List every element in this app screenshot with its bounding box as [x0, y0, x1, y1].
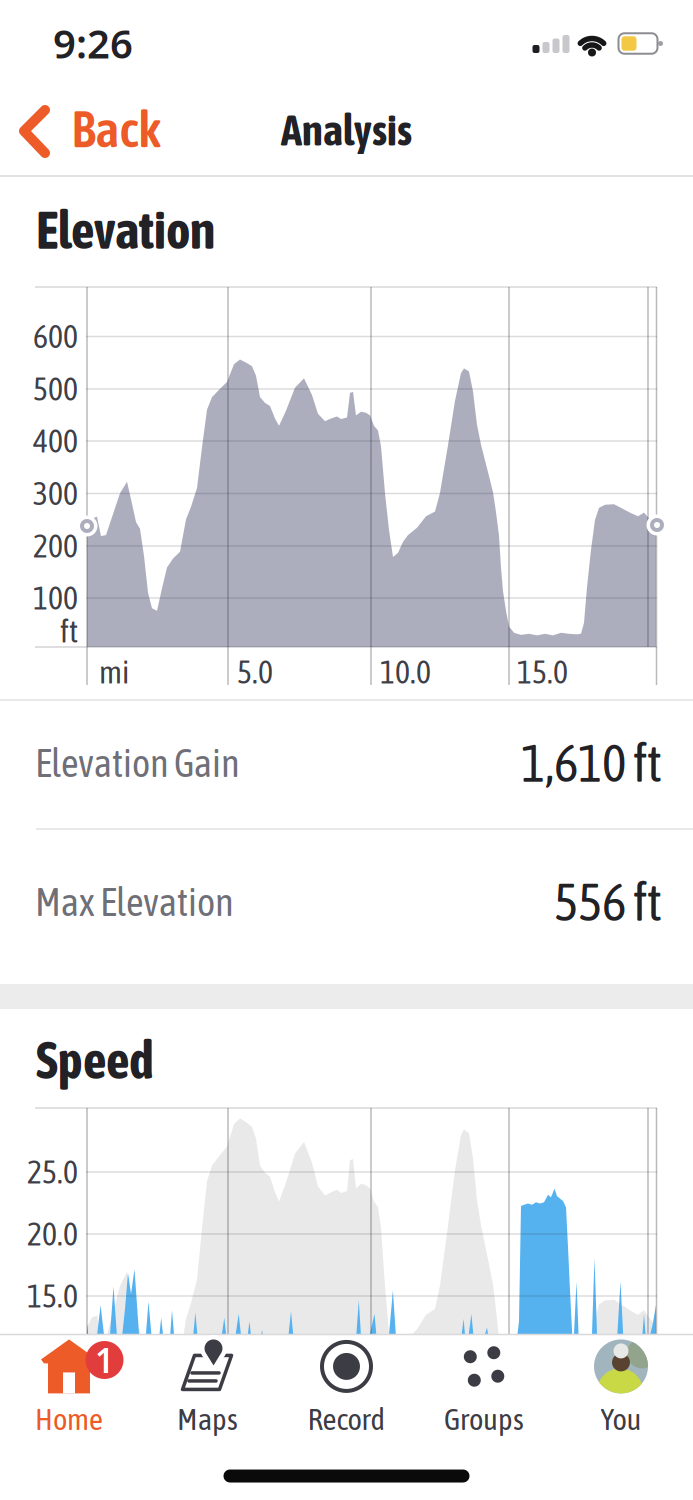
staticText: 1,610 ft [521, 733, 662, 793]
staticText: Analysis [281, 106, 412, 154]
staticText: Speed [36, 1030, 154, 1090]
staticText: 200 [33, 528, 78, 564]
staticText: 500 [33, 371, 78, 407]
button[interactable]: Record [277, 1343, 415, 1433]
staticText: mi [99, 654, 129, 690]
staticText: Back [71, 100, 160, 158]
staticText: ft [60, 613, 78, 649]
staticText: 100 [33, 580, 78, 616]
staticText: 9:26 [53, 16, 133, 69]
staticText: You [600, 1401, 641, 1436]
staticText: 25.0 [27, 1154, 78, 1190]
staticText: Elevation [36, 200, 215, 260]
staticText: 15.0 [517, 654, 568, 690]
staticText: 600 [33, 318, 78, 355]
button[interactable]: Maps [138, 1343, 276, 1433]
staticText: Maps [177, 1401, 238, 1436]
staticText: Home [35, 1401, 103, 1436]
button[interactable]: You [552, 1343, 690, 1433]
staticText: 5.0 [237, 654, 273, 690]
staticText: Groups [444, 1401, 524, 1436]
staticText: 10.0 [380, 654, 431, 690]
staticText: 1 [95, 1338, 114, 1382]
staticText: Elevation Gain [35, 741, 240, 785]
button[interactable]: Groups [415, 1343, 553, 1433]
staticText: 20.0 [27, 1216, 78, 1252]
staticText: 15.0 [27, 1278, 78, 1314]
button[interactable]: Home [0, 1343, 138, 1433]
staticText: Record [307, 1401, 385, 1436]
button[interactable]: Back [20, 96, 170, 164]
staticText: 300 [33, 475, 78, 512]
staticText: Max Elevation [35, 880, 234, 924]
staticText: 400 [33, 423, 78, 459]
staticText: 556 ft [554, 872, 662, 932]
